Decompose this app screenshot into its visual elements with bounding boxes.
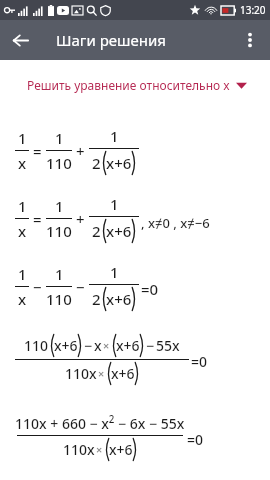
staticText: − — [146, 336, 155, 355]
staticText: 2 — [92, 289, 101, 309]
staticText: 110 — [46, 289, 72, 309]
staticText: x+6 — [106, 221, 132, 241]
staticText: 110 — [24, 336, 49, 355]
staticText: x+6 — [54, 336, 78, 355]
staticText: =0 — [187, 430, 204, 449]
staticText: x+6 — [116, 336, 140, 355]
staticText: x — [18, 221, 27, 241]
staticText: Шаги решения — [56, 30, 166, 50]
staticText: 110 — [46, 153, 72, 173]
staticText: =0 — [141, 279, 159, 299]
staticText: 1 — [18, 264, 27, 284]
staticText: =0 — [191, 352, 208, 371]
button[interactable]: Назад — [0, 20, 40, 60]
staticText: = — [33, 209, 42, 229]
button[interactable]: Решить уравнение относительно x — [0, 70, 270, 100]
staticText: 1 — [110, 262, 119, 282]
staticText: 1 — [110, 126, 119, 146]
staticText: × — [96, 442, 103, 457]
staticText: x+6 — [106, 153, 132, 173]
staticText: , x≠0 , x≠−6 — [141, 214, 210, 232]
staticText: − — [84, 336, 93, 355]
staticText: 110x + 660 − x2 − 6x − 55x — [15, 413, 185, 433]
staticText: × — [103, 338, 110, 353]
staticText: x — [94, 336, 102, 355]
staticText: x+6 — [109, 440, 133, 459]
staticText: 1 — [55, 264, 64, 284]
staticText: 1 — [18, 196, 27, 216]
staticText: 55x — [156, 336, 180, 355]
staticText: − — [33, 277, 42, 297]
staticText: 1 — [18, 128, 27, 148]
staticText: − — [76, 277, 85, 297]
staticText: + — [76, 141, 85, 161]
staticText: x+6 — [111, 364, 135, 383]
staticText: 110x — [63, 440, 95, 459]
staticText: = — [33, 141, 42, 161]
staticText: 110 — [46, 221, 72, 241]
staticText: Решить уравнение относительно x — [27, 77, 230, 93]
staticText: 1 — [55, 196, 64, 216]
staticText: × — [98, 366, 105, 381]
staticText: x — [18, 153, 27, 173]
staticText: 13:20 — [240, 3, 266, 17]
staticText: 2 — [92, 221, 101, 241]
staticText: 1 — [55, 128, 64, 148]
staticText: 1 — [110, 194, 119, 214]
staticText: 110x — [65, 364, 97, 383]
staticText: x+6 — [106, 289, 132, 309]
staticText: + — [76, 209, 85, 229]
staticText: x — [18, 289, 27, 309]
staticText: 2 — [92, 153, 101, 173]
button[interactable]: Ещё — [230, 20, 270, 60]
